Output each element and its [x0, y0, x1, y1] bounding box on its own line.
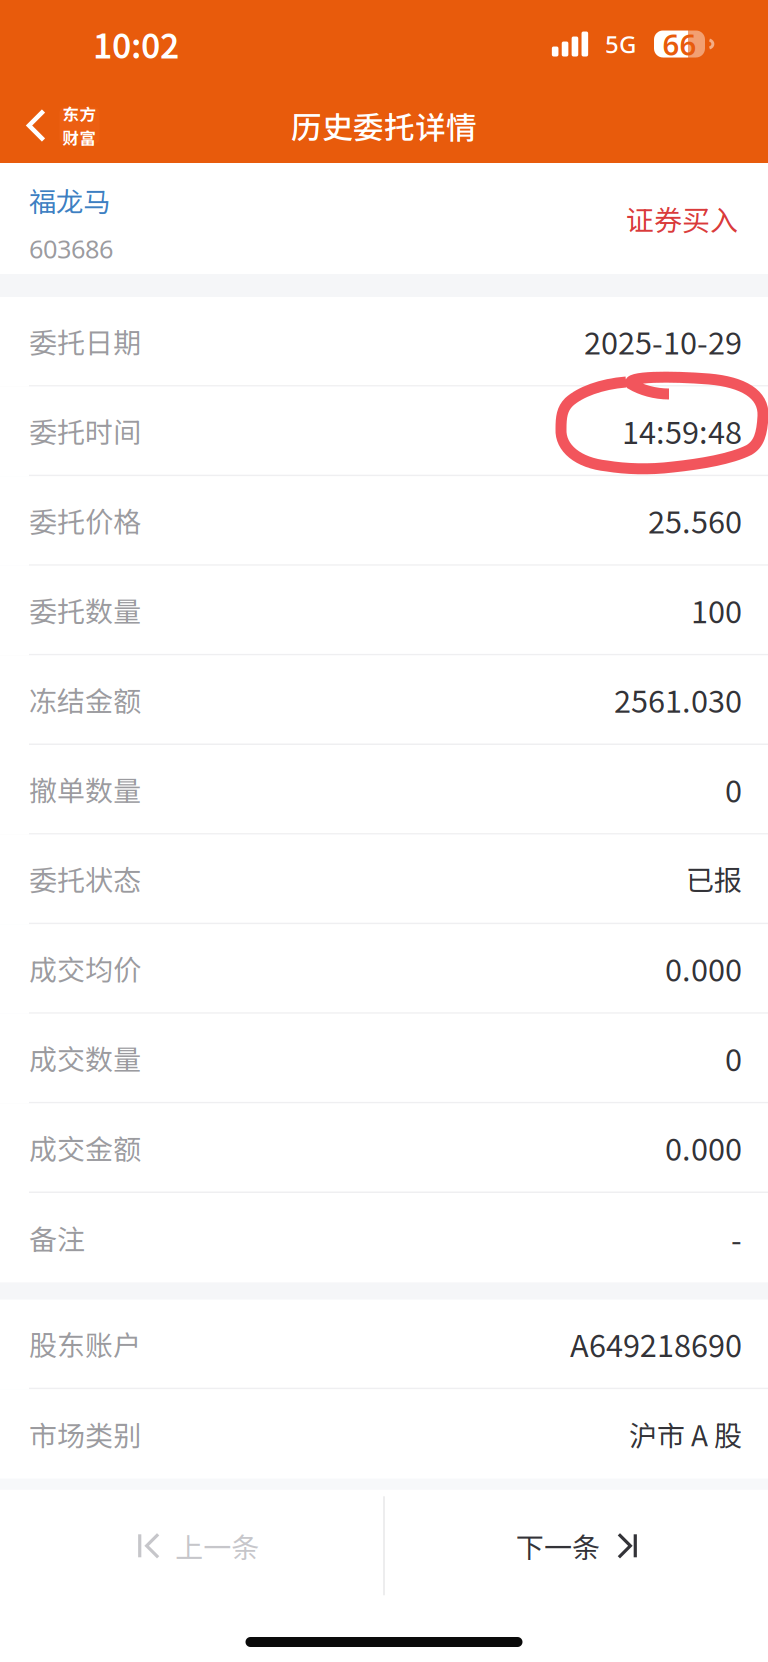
staticText: 0: [725, 1036, 742, 1080]
staticText: 成交数量: [29, 1038, 141, 1078]
button[interactable]: 返回: [0, 88, 115, 163]
staticText: 下一条: [516, 1525, 600, 1566]
staticText: 委托状态: [29, 858, 141, 899]
staticText: 冻结金额: [29, 679, 141, 720]
staticText: 沪市 A 股: [629, 1414, 742, 1454]
staticText: 成交金额: [29, 1127, 141, 1168]
staticText: 委托时间: [29, 410, 141, 451]
staticText: 100: [691, 588, 742, 632]
staticText: 备注: [29, 1217, 85, 1258]
button[interactable]: 下一条: [385, 1490, 768, 1602]
staticText: 0.000: [665, 946, 742, 990]
staticText: 成交均价: [29, 948, 141, 988]
staticText: 市场类别: [29, 1414, 141, 1454]
staticText: 603686: [29, 232, 113, 266]
staticText: 66: [662, 24, 696, 63]
staticText: 财富: [62, 125, 96, 150]
staticText: 证券买入: [626, 198, 738, 239]
staticText: A649218690: [570, 1321, 742, 1366]
staticText: 2561.030: [614, 677, 742, 722]
staticText: 0: [725, 767, 742, 811]
staticText: 撤单数量: [29, 769, 141, 809]
staticText: 25.560: [648, 498, 742, 542]
staticText: 委托价格: [29, 500, 141, 540]
staticText: 10:02: [93, 20, 179, 68]
staticText: 东方: [62, 101, 96, 125]
staticText: 历史委托详情: [291, 103, 477, 148]
staticText: 已报: [686, 858, 742, 899]
button[interactable]: 上一条: [0, 1490, 383, 1602]
staticText: -: [731, 1216, 742, 1260]
staticText: 委托数量: [29, 590, 141, 630]
staticText: 福龙马: [29, 180, 110, 220]
staticText: 委托日期: [29, 321, 141, 361]
staticText: 上一条: [175, 1525, 259, 1566]
staticText: 14:59:48: [622, 408, 742, 453]
staticText: 股东账户: [29, 1323, 141, 1364]
staticText: 2025-10-29: [584, 319, 742, 363]
staticText: 5G: [605, 28, 636, 60]
staticText: 0.000: [665, 1125, 742, 1170]
